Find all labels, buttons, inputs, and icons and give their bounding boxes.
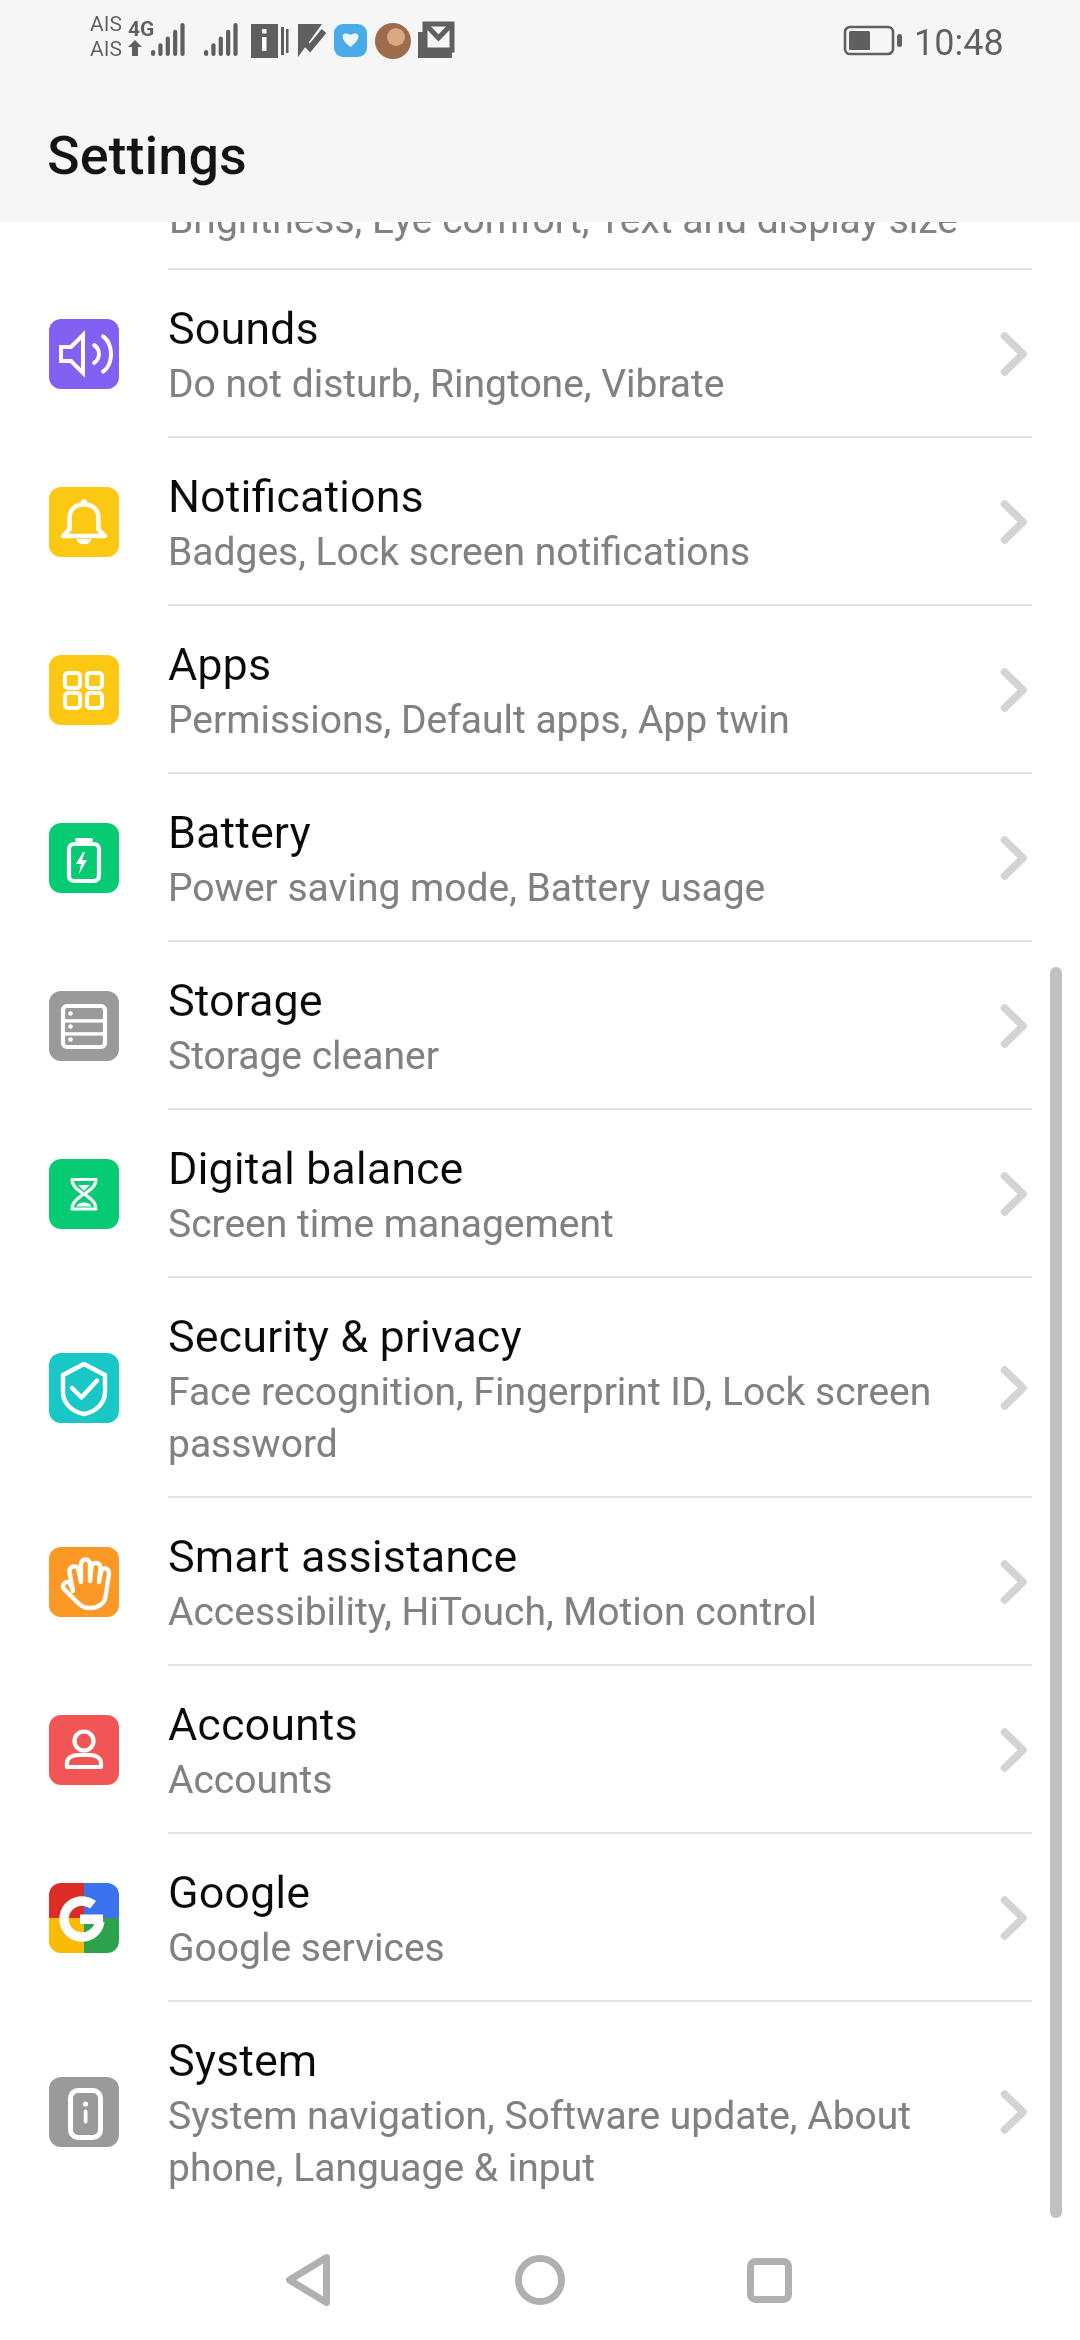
staticText: Accessibility, HiTouch, Motion control	[168, 1589, 817, 1635]
staticText: 4G	[128, 17, 155, 42]
button[interactable]: Security & privacy	[0, 1278, 1080, 1498]
staticText: Badges, Lock screen notifications	[168, 529, 751, 575]
staticText: 10:48	[914, 22, 1004, 64]
staticText: Permissions, Default apps, App twin	[168, 697, 790, 743]
staticText: Battery	[168, 806, 311, 859]
staticText: AIS	[90, 12, 122, 37]
staticText: Google services	[168, 1925, 445, 1971]
staticText: Do not disturb, Ringtone, Vibrate	[168, 361, 725, 407]
button[interactable]: Storage	[0, 942, 1080, 1110]
button[interactable]: Recents	[709, 2220, 829, 2340]
staticText: Google	[168, 1866, 311, 1919]
staticText: System	[168, 2034, 318, 2087]
button[interactable]: Digital balance	[0, 1110, 1080, 1278]
button[interactable]: Sounds	[0, 270, 1080, 438]
staticText: System navigation, Software update, Abou…	[168, 2093, 912, 2191]
button[interactable]: Smart assistance	[0, 1498, 1080, 1666]
button[interactable]: Google	[0, 1834, 1080, 2002]
staticText: Security & privacy	[168, 1310, 522, 1363]
staticText: AIS	[90, 37, 122, 62]
button[interactable]: Battery	[0, 774, 1080, 942]
staticText: Sounds	[168, 302, 319, 355]
staticText: Smart assistance	[168, 1530, 518, 1583]
staticText: Storage	[168, 974, 323, 1027]
staticText: Apps	[168, 638, 272, 691]
button[interactable]: Back	[248, 2220, 368, 2340]
button[interactable]: Home	[480, 2220, 600, 2340]
staticText: Accounts	[168, 1757, 333, 1803]
staticText: Power saving mode, Battery usage	[168, 865, 766, 911]
staticText: Digital balance	[168, 1142, 464, 1195]
staticText: Storage cleaner	[168, 1033, 439, 1079]
staticText: Accounts	[168, 1698, 358, 1751]
staticText: Brightness, Eye comfort, Text and displa…	[169, 197, 959, 243]
staticText: Face recognition, Fingerprint ID, Lock s…	[168, 1369, 932, 1467]
button[interactable]: Accounts	[0, 1666, 1080, 1834]
staticText: Settings	[47, 124, 247, 187]
button[interactable]: Apps	[0, 606, 1080, 774]
staticText: Screen time management	[168, 1201, 614, 1247]
button[interactable]: System	[0, 2002, 1080, 2222]
staticText: Notifications	[168, 470, 424, 523]
button[interactable]: Notifications	[0, 438, 1080, 606]
